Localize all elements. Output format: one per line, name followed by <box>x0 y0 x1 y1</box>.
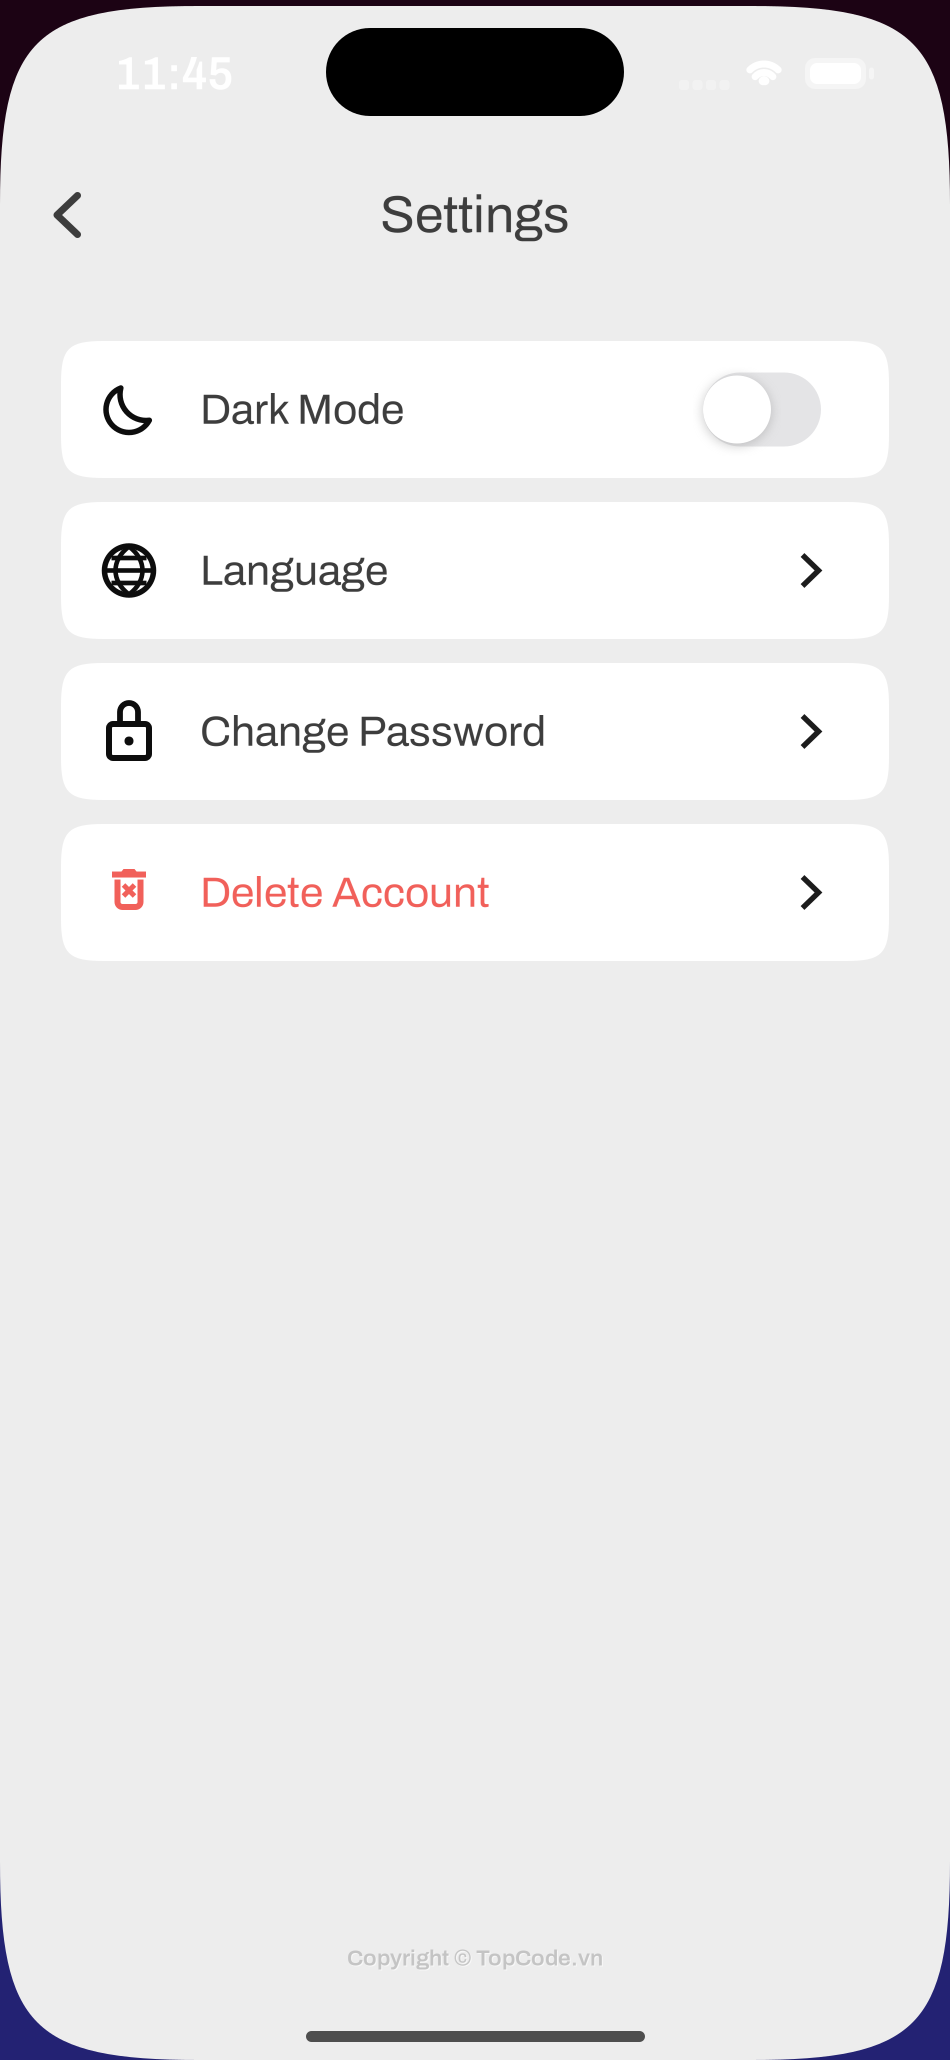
button[interactable]: Language <box>61 502 889 639</box>
staticText: Copyright © TopCode.vn <box>348 1947 604 1971</box>
button[interactable]: Delete Account <box>61 824 889 961</box>
staticText: 11:45 <box>114 49 233 99</box>
staticText: Language <box>200 547 388 594</box>
button[interactable]: Back <box>15 163 119 267</box>
staticText: Dark Mode <box>200 386 404 433</box>
button[interactable]: Dark Mode <box>61 341 889 478</box>
staticText: Delete Account <box>200 869 490 916</box>
button[interactable]: Change Password <box>61 663 889 800</box>
staticText: Copyright © TopCode.vn <box>347 1946 603 1970</box>
staticText: Settings <box>380 187 570 243</box>
staticText: Change Password <box>200 708 546 755</box>
